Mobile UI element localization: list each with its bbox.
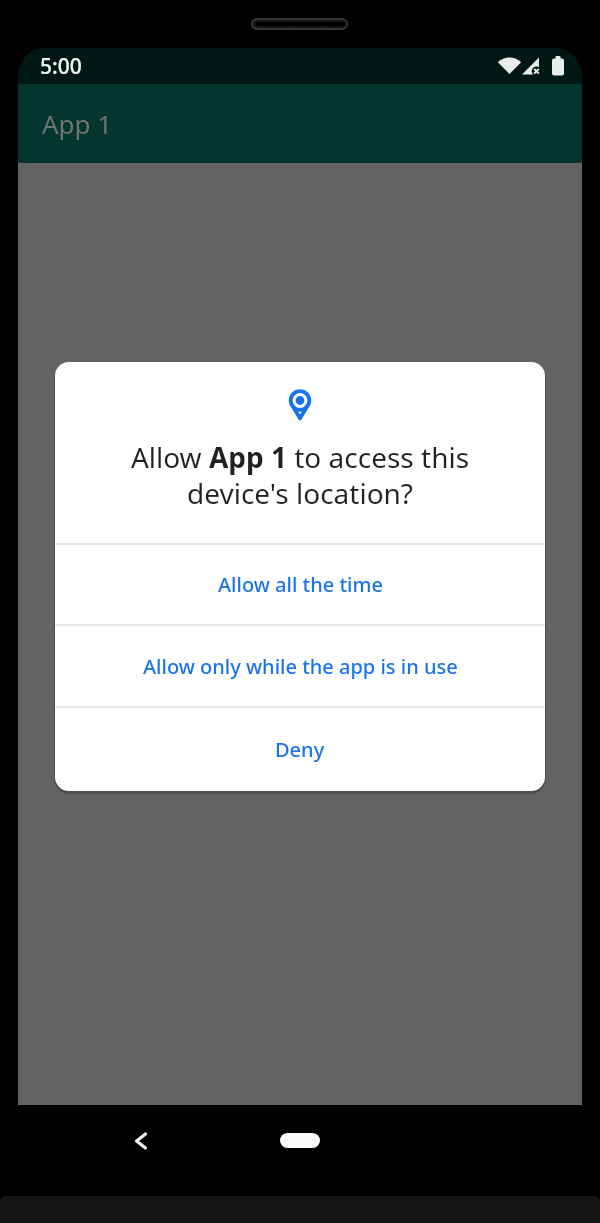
staticText: 5:00 [40, 52, 82, 81]
staticText: Allow only while the app is in use [143, 653, 458, 680]
staticText: Allow App 1 to access this device's loca… [55, 438, 545, 512]
button[interactable] [280, 1133, 320, 1148]
staticText: App 1 [42, 106, 113, 141]
button[interactable]: Deny [55, 708, 545, 791]
staticText: Allow all the time [218, 571, 383, 598]
staticText: Deny [275, 736, 325, 763]
button[interactable]: Allow all the time [55, 545, 545, 624]
button[interactable] [134, 1132, 148, 1150]
button[interactable]: Allow only while the app is in use [55, 626, 545, 706]
